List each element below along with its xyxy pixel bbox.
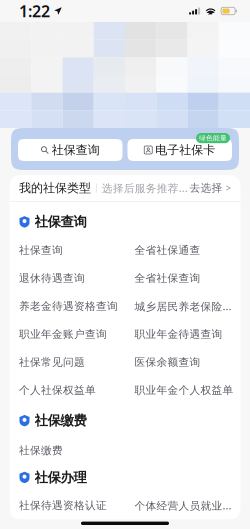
staticText: 职业年金账户查询 xyxy=(19,327,107,341)
staticText: 个体经营人员就业登记 xyxy=(134,498,240,512)
button[interactable]: 个体经营人员就业登记 xyxy=(125,491,240,519)
staticText: 我的社保类型 xyxy=(19,181,91,195)
staticText: 1:22 xyxy=(19,0,50,22)
staticText: 社保办理 xyxy=(34,469,86,486)
staticText: 电子社保卡 xyxy=(155,143,215,157)
staticText: 社保查询 xyxy=(52,143,100,157)
button[interactable]: 医保余额查询 xyxy=(125,348,240,376)
staticText: 社保待遇资格认证 xyxy=(19,499,107,512)
staticText: 社保缴费 xyxy=(19,444,63,457)
button[interactable]: 社保常见问题 xyxy=(9,348,125,376)
button[interactable]: 城乡居民养老保险查询 xyxy=(125,292,240,320)
button[interactable]: 养老金待遇资格查询 xyxy=(9,292,125,320)
button[interactable]: 职业年金待遇查询 xyxy=(125,320,240,348)
button[interactable]: 职业年金个人权益单 xyxy=(125,376,240,404)
staticText: 职业年金个人权益单 xyxy=(134,383,233,397)
button[interactable]: 社保查询 xyxy=(9,236,125,264)
button[interactable]: 我的社保类型 xyxy=(9,175,240,201)
button[interactable]: 个人社保权益单 xyxy=(9,376,125,404)
staticText: 全省社保通查 xyxy=(134,243,200,257)
button[interactable]: 社保待遇资格认证 xyxy=(9,491,125,519)
staticText: 养老金待遇资格查询 xyxy=(19,299,118,313)
button[interactable]: 社保查询 xyxy=(18,139,122,161)
staticText: 退休待遇查询 xyxy=(19,271,85,285)
staticText: 医保余额查询 xyxy=(134,355,200,369)
staticText: 去选择 xyxy=(189,181,222,194)
button[interactable]: 职业年金账户查询 xyxy=(9,320,125,348)
staticText: 绿色能量 xyxy=(199,134,227,142)
button[interactable]: 退休待遇查询 xyxy=(9,264,125,292)
staticText: 个人社保权益单 xyxy=(19,383,96,397)
staticText: 职业年金待遇查询 xyxy=(134,327,222,341)
staticText: 社保常见问题 xyxy=(19,355,85,369)
staticText: 全省社保查询 xyxy=(134,271,200,285)
staticText: 社保查询 xyxy=(34,214,86,230)
staticText: 选择后服务推荐更精准 xyxy=(102,181,189,195)
staticText: 社保查询 xyxy=(19,243,63,257)
staticText: 城乡居民养老保险查询 xyxy=(134,299,240,313)
button[interactable]: 全省社保查询 xyxy=(125,264,240,292)
button[interactable]: 电子社保卡 xyxy=(127,139,232,161)
staticText: 社保缴费 xyxy=(34,412,86,429)
button[interactable]: 全省社保通查 xyxy=(125,236,240,264)
button[interactable]: 社保缴费 xyxy=(9,437,125,465)
